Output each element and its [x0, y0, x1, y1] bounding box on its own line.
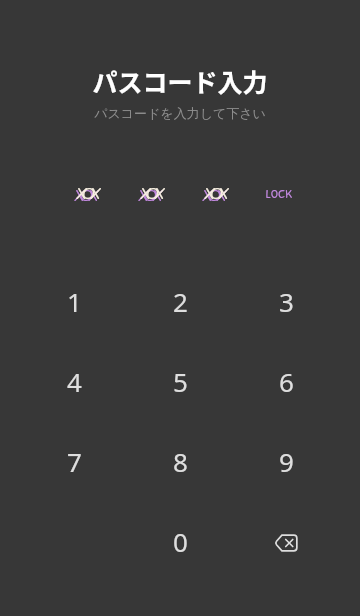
staticText: XOX [140, 182, 161, 203]
button[interactable]: 1 [21, 261, 127, 341]
button[interactable]: 5 [127, 341, 233, 421]
button[interactable]: Delete [233, 501, 339, 581]
staticText: 5 [173, 364, 188, 399]
staticText: XOX [76, 182, 97, 203]
button[interactable]: 4 [21, 341, 127, 421]
staticText: XOX [74, 184, 95, 205]
staticText: 8 [173, 444, 188, 479]
staticText: 6 [279, 364, 294, 399]
button[interactable]: 6 [233, 341, 339, 421]
button[interactable]: 2 [127, 261, 233, 341]
staticText: パスコードを入力して下さい [94, 105, 266, 121]
staticText: 9 [279, 444, 294, 479]
button[interactable]: 3 [233, 261, 339, 341]
button[interactable]: 9 [233, 421, 339, 501]
staticText: XOX [202, 184, 223, 205]
staticText: XOX [204, 182, 225, 203]
staticText: パスコード入力 [92, 63, 268, 99]
staticText: XOX [138, 184, 159, 205]
button[interactable]: 8 [127, 421, 233, 501]
staticText: 7 [67, 444, 82, 479]
staticText: 1 [67, 284, 82, 319]
staticText: 2 [173, 284, 188, 319]
staticText: 0 [173, 524, 188, 559]
button[interactable]: 0 [127, 501, 233, 581]
button[interactable]: 7 [21, 421, 127, 501]
staticText: LOCK [266, 184, 292, 202]
staticText: 4 [67, 364, 82, 399]
staticText: 3 [279, 284, 294, 319]
